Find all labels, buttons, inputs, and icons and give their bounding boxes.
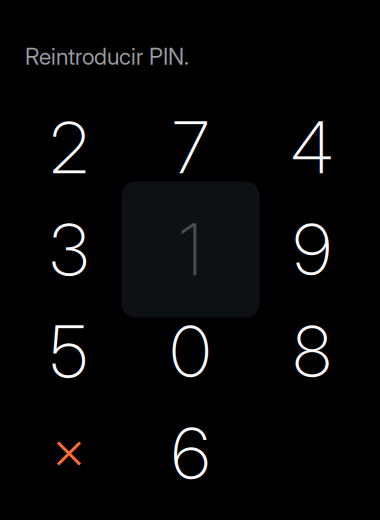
button[interactable]: Delete xyxy=(0,385,138,520)
staticText: 8 xyxy=(293,309,331,394)
staticText: 2 xyxy=(50,105,88,190)
button[interactable]: 5 xyxy=(0,283,138,419)
button[interactable]: 8 xyxy=(243,283,380,419)
button[interactable]: 7 xyxy=(121,79,259,215)
button[interactable]: 6 xyxy=(121,385,259,520)
staticText: 1 xyxy=(179,207,202,292)
staticText: Reintroducir PIN. xyxy=(25,43,189,70)
button[interactable]: 1 xyxy=(121,181,259,317)
staticText: 3 xyxy=(49,207,88,292)
button[interactable]: 9 xyxy=(243,181,380,317)
button[interactable]: 0 xyxy=(121,283,259,419)
staticText: 5 xyxy=(50,309,88,394)
staticText: 7 xyxy=(172,105,208,190)
staticText: 0 xyxy=(170,309,211,394)
button[interactable]: 4 xyxy=(243,79,380,215)
button[interactable]: 3 xyxy=(0,181,138,317)
staticText: 9 xyxy=(293,207,331,292)
staticText: 6 xyxy=(171,411,209,496)
staticText: 4 xyxy=(291,105,333,190)
button[interactable]: 2 xyxy=(0,79,138,215)
